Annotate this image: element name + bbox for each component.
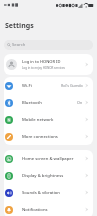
staticText: Sounds & vibration	[22, 190, 60, 196]
staticText: Settings	[5, 21, 34, 31]
staticText: Wi-Fi	[22, 83, 32, 89]
staticText: On	[77, 100, 83, 105]
staticText: Home screen & wallpaper	[22, 156, 74, 162]
button[interactable]: Notifications	[4, 201, 93, 216]
staticText: Log in to enjoy HONOR services	[22, 66, 65, 70]
button[interactable]: Wi-Fi	[4, 77, 93, 94]
staticText: Bluetooth	[22, 100, 42, 106]
button[interactable]: Sounds & vibration	[4, 184, 93, 201]
staticText: Rol's Gumdo	[61, 83, 83, 88]
button[interactable]: Bluetooth	[4, 94, 93, 111]
staticText: Notifications	[22, 207, 48, 213]
staticText: Log in to HONOR ID	[22, 59, 61, 65]
button[interactable]: Log in to HONOR ID	[4, 54, 93, 75]
button[interactable]: Search	[4, 40, 93, 50]
staticText: Display & brightness	[22, 173, 64, 179]
button[interactable]: Display & brightness	[4, 167, 93, 184]
button[interactable]: Mobile network	[4, 111, 93, 128]
staticText: More connections	[22, 134, 58, 140]
staticText: Search	[12, 42, 26, 48]
staticText: Mobile network	[22, 117, 54, 123]
button[interactable]: More connections	[4, 128, 93, 145]
button[interactable]: Home screen & wallpaper	[4, 150, 93, 167]
